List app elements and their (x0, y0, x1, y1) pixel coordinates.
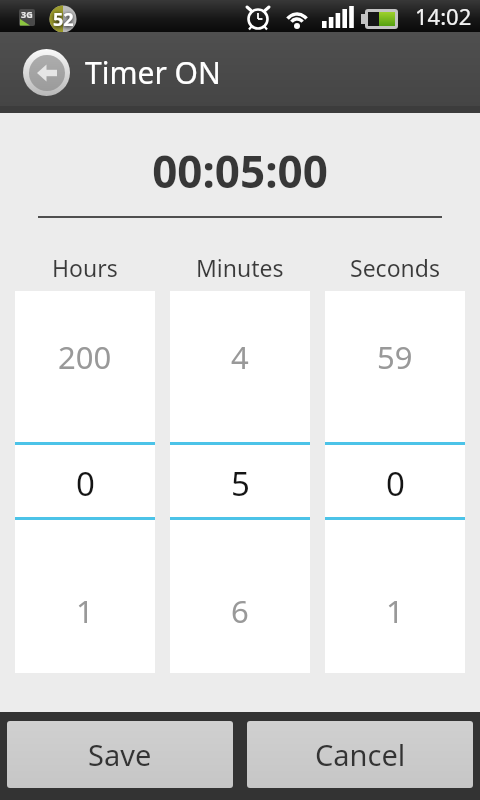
button[interactable]: Cancel (247, 721, 473, 788)
button[interactable]: Save (7, 721, 233, 788)
button[interactable] (23, 49, 70, 96)
staticText: Timer ON (85, 52, 221, 93)
staticText: 200 (58, 336, 112, 378)
staticText: Hours (52, 252, 118, 283)
staticText: Minutes (196, 252, 284, 283)
staticText: 1 (386, 590, 404, 632)
staticText: 1 (76, 590, 94, 632)
staticText: 5 (231, 461, 250, 506)
staticText: Seconds (350, 252, 440, 283)
staticText: 52 (53, 7, 74, 32)
staticText: 0 (386, 461, 405, 506)
staticText: 4 (231, 336, 249, 378)
button[interactable]: 5 (170, 445, 310, 517)
staticText: Save (88, 735, 152, 774)
button[interactable]: 0 (15, 445, 155, 517)
staticText: 59 (377, 336, 413, 378)
staticText: Cancel (315, 735, 406, 774)
staticText: 00:05:00 (0, 141, 480, 201)
staticText: 3G (21, 8, 33, 20)
staticText: 6 (231, 590, 249, 632)
staticText: 0 (76, 461, 95, 506)
button[interactable]: 0 (325, 445, 465, 517)
staticText: 14:02 (415, 1, 472, 31)
